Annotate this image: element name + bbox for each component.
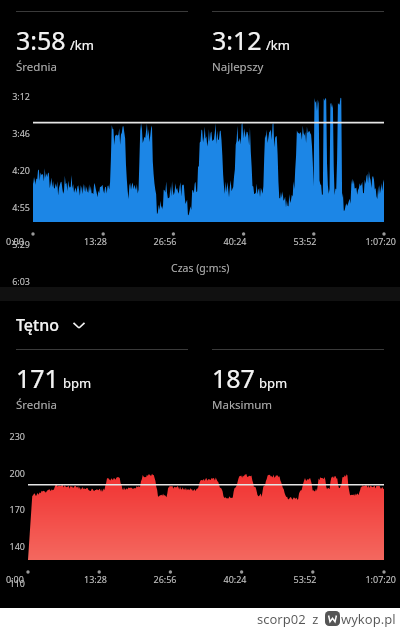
staticText: 40:24 [200,235,270,247]
staticText: 4:20 [0,164,30,176]
button[interactable]: 3:12 [212,11,384,75]
staticText: 0:00 [6,573,61,585]
staticText: 4:55 [0,201,30,213]
staticText: /km [70,36,94,54]
staticText: 53:52 [270,235,340,247]
staticText: 3:12 [212,23,262,57]
staticText: Najlepszy [212,59,264,75]
staticText: 13:28 [61,235,130,247]
button[interactable]: 171 [16,349,188,413]
staticText: 6:03 [0,275,30,287]
staticText: Tętno [16,314,59,336]
staticText: scorp02 z [257,610,319,628]
staticText: 1:07:20 [340,235,396,247]
staticText: 0:00 [6,235,61,247]
staticText: 40:24 [200,573,270,585]
staticText: 170 [0,503,25,515]
staticText: 1:07:20 [340,573,396,585]
staticText: 5:29 [0,238,30,250]
button[interactable]: Tętno [16,314,87,336]
staticText: wykop.pl [341,610,396,628]
button[interactable]: 187 [212,349,384,413]
staticText: 13:28 [61,573,130,585]
staticText: 3:46 [0,127,30,139]
other: Rozwiń [71,317,87,333]
staticText: 3:58 [16,23,66,57]
staticText: 26:56 [130,573,200,585]
staticText: 230 [0,430,25,442]
staticText: bpm [63,374,92,392]
staticText: Maksimum [212,397,273,413]
staticText: Średnia [16,397,57,413]
staticText: 140 [0,540,25,552]
staticText: Czas (g:m:s) [171,261,230,275]
staticText: 3:12 [0,90,30,102]
staticText: 110 [0,577,25,589]
staticText: 26:56 [130,235,200,247]
staticText: Średnia [16,59,57,75]
staticText: 53:52 [270,573,340,585]
staticText: 187 [212,361,255,395]
staticText: 200 [0,467,25,479]
staticText: /km [266,36,290,54]
button[interactable]: 3:58 [16,11,188,75]
staticText: bpm [259,374,288,392]
staticText: 171 [16,361,59,395]
